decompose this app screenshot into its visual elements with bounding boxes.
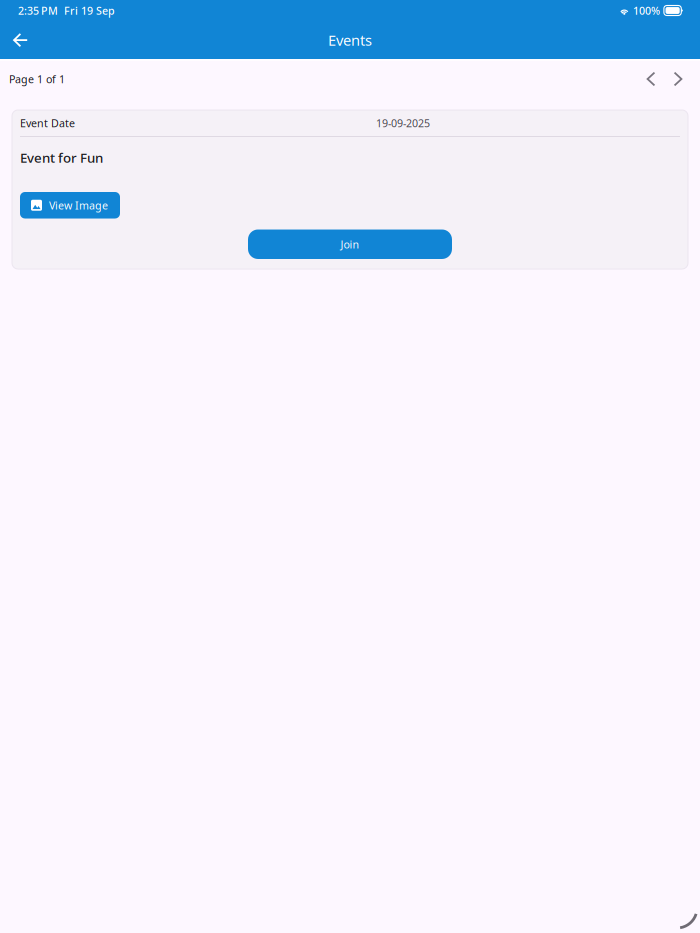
button[interactable]: Back <box>0 21 58 59</box>
staticText: 100% <box>633 3 660 18</box>
button[interactable]: View Image <box>20 192 120 218</box>
staticText: Events <box>328 30 372 50</box>
button[interactable]: Previous page <box>639 65 663 93</box>
staticText: 19-09-2025 <box>376 116 430 130</box>
staticText: Join <box>340 237 359 251</box>
button[interactable]: Next page <box>666 65 690 93</box>
staticText: View Image <box>49 198 108 212</box>
staticText: Event for Fun <box>20 149 103 166</box>
staticText: Fri 19 Sep <box>64 3 115 18</box>
button[interactable]: Join <box>248 229 452 259</box>
staticText: Page 1 of 1 <box>9 72 65 86</box>
staticText: 2:35 PM <box>18 3 58 18</box>
staticText: Event Date <box>20 116 75 130</box>
